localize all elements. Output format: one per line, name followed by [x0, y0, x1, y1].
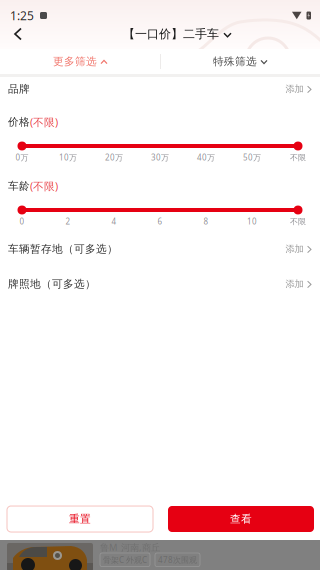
staticText: 添加	[286, 83, 304, 95]
staticText: 0万	[15, 152, 28, 163]
staticText: 1:25	[10, 7, 34, 23]
staticText: 不限	[290, 217, 306, 226]
staticText: 0	[19, 216, 24, 227]
staticText: 添加	[286, 243, 304, 255]
staticText: 10	[247, 216, 257, 227]
button[interactable]: 重置	[7, 506, 153, 532]
staticText: 价格	[8, 115, 30, 128]
staticText: 牌照地（可多选）	[8, 277, 96, 290]
staticText: 不限	[290, 153, 306, 162]
staticText: 重置	[69, 512, 91, 525]
button[interactable]: 【一口价】二手车	[112, 21, 242, 47]
staticText: 特殊筛选	[213, 55, 257, 68]
staticText: 查看	[230, 512, 252, 525]
staticText: 20万	[105, 152, 123, 163]
staticText: 添加	[286, 278, 304, 290]
staticText: 鲁M 河南,商丘	[100, 541, 160, 553]
staticText: 30万	[151, 152, 169, 163]
staticText: 品牌	[8, 82, 30, 95]
button[interactable]: 鲁M 河南,商丘	[0, 540, 320, 570]
staticText: 8	[203, 216, 208, 227]
staticText: 车辆暂存地（可多选）	[8, 242, 118, 255]
staticText: 478次围观	[158, 554, 197, 565]
button[interactable]: 牌照地（可多选）	[0, 276, 320, 292]
staticText: 更多筛选	[53, 55, 97, 68]
button[interactable]: 品牌	[0, 81, 320, 97]
staticText: (不限)	[30, 115, 58, 129]
button[interactable]: 返回	[3, 21, 33, 47]
staticText: 骨架C 外观C	[103, 554, 147, 565]
staticText: 车龄	[8, 179, 30, 192]
staticText: 40万	[197, 152, 215, 163]
staticText: 6	[157, 216, 162, 227]
staticText: (不限)	[30, 179, 58, 193]
staticText: 4	[111, 216, 116, 227]
button[interactable]: 车辆暂存地（可多选）	[0, 241, 320, 257]
staticText: 50万	[243, 152, 261, 163]
button[interactable]: 特殊筛选	[160, 49, 320, 74]
button[interactable]: 更多筛选	[0, 49, 160, 74]
staticText: 10万	[59, 152, 77, 163]
staticText: 【一口价】二手车	[123, 27, 219, 41]
staticText: 2	[65, 216, 70, 227]
button[interactable]: 查看	[168, 506, 314, 532]
